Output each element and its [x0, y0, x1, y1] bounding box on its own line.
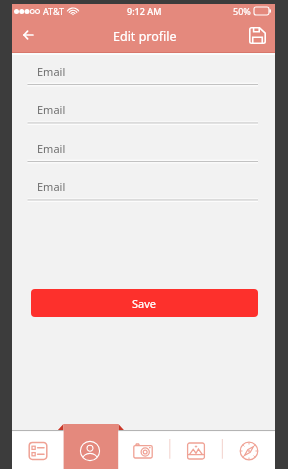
staticText: Email: [37, 102, 66, 117]
button[interactable]: Save: [243, 21, 271, 49]
button[interactable]: Profile: [64, 430, 116, 469]
button[interactable]: Email: [12, 59, 275, 83]
staticText: Edit profile: [113, 28, 177, 45]
staticText: Email: [37, 64, 66, 79]
button[interactable]: Camera: [116, 430, 169, 469]
button[interactable]: Gallery: [169, 430, 222, 469]
staticText: Email: [37, 141, 66, 156]
button[interactable]: Email: [12, 136, 275, 160]
button[interactable]: Save: [31, 289, 258, 317]
button[interactable]: Email: [12, 174, 275, 198]
button[interactable]: Email: [12, 97, 275, 121]
staticText: 50%: [233, 5, 251, 17]
staticText: Save: [132, 296, 157, 311]
staticText: AT&T: [43, 5, 64, 17]
button[interactable]: Explore: [222, 430, 275, 469]
staticText: 9:12 AM: [127, 5, 162, 17]
button[interactable]: Back: [14, 21, 42, 49]
button[interactable]: List: [12, 430, 64, 469]
staticText: Email: [37, 179, 66, 194]
